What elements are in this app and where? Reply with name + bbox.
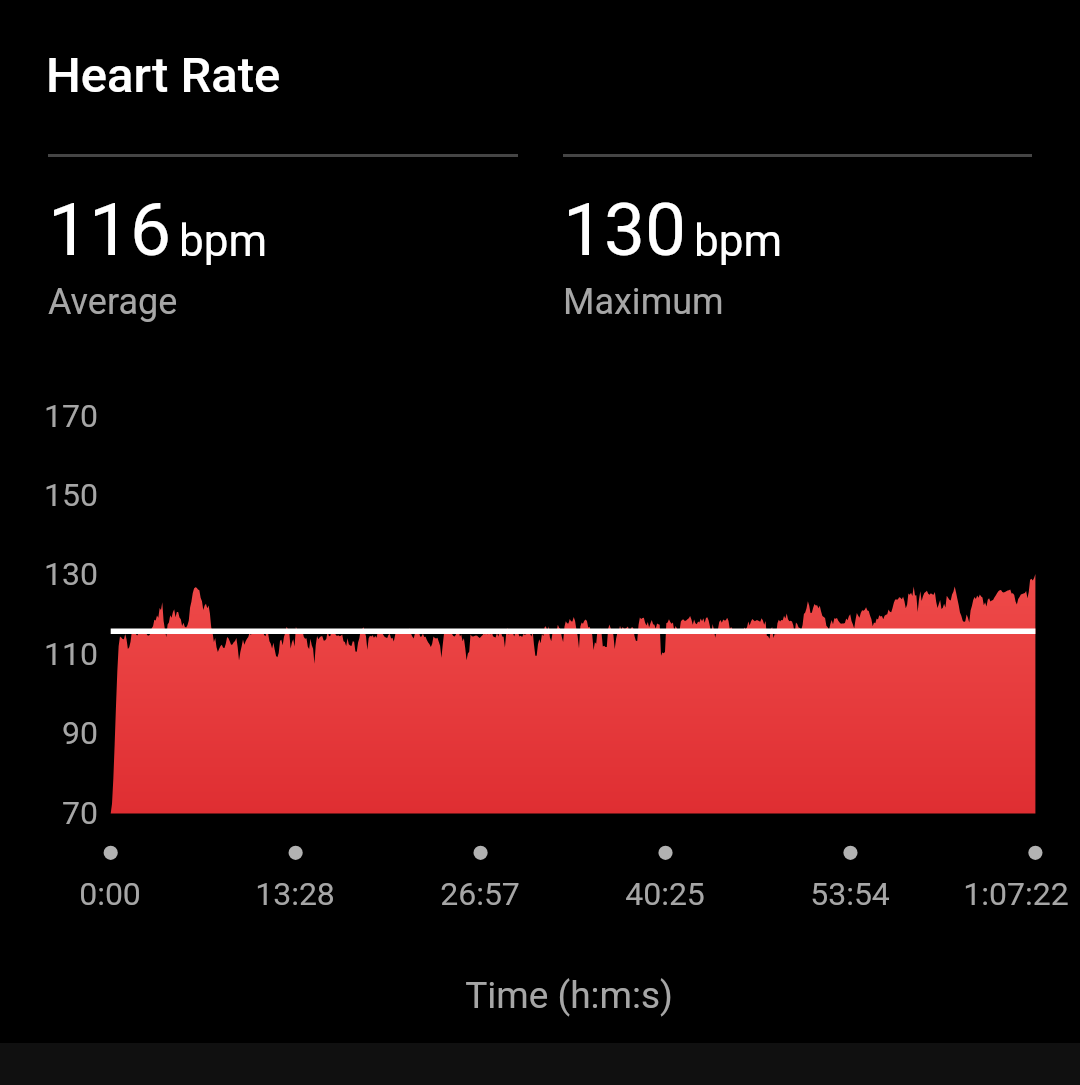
staticText: Average [48, 281, 178, 323]
staticText: Heart Rate [46, 47, 281, 104]
staticText: 0:00 [0, 875, 220, 913]
button[interactable]: 116 [48, 154, 518, 326]
staticText: 1:07:22 [906, 875, 1080, 913]
button[interactable]: 130 [563, 154, 1032, 326]
staticText: bpm [179, 215, 267, 267]
button[interactable]: Heart rate chart [0, 380, 1080, 940]
staticText: 70 [0, 794, 98, 832]
staticText: bpm [694, 215, 782, 267]
staticText: 26:57 [370, 875, 590, 913]
staticText: 90 [0, 714, 98, 752]
staticText: 130 [0, 555, 98, 593]
staticText: 150 [0, 476, 98, 514]
staticText: 40:25 [555, 875, 775, 913]
staticText: 53:54 [740, 875, 960, 913]
staticText: 130 [563, 187, 687, 273]
staticText: 116 [48, 187, 172, 273]
staticText: Maximum [563, 281, 724, 323]
staticText: 13:28 [185, 875, 405, 913]
staticText: 110 [0, 635, 98, 673]
staticText: 170 [0, 397, 98, 435]
staticText: Time (h:m:s) [344, 974, 794, 1017]
